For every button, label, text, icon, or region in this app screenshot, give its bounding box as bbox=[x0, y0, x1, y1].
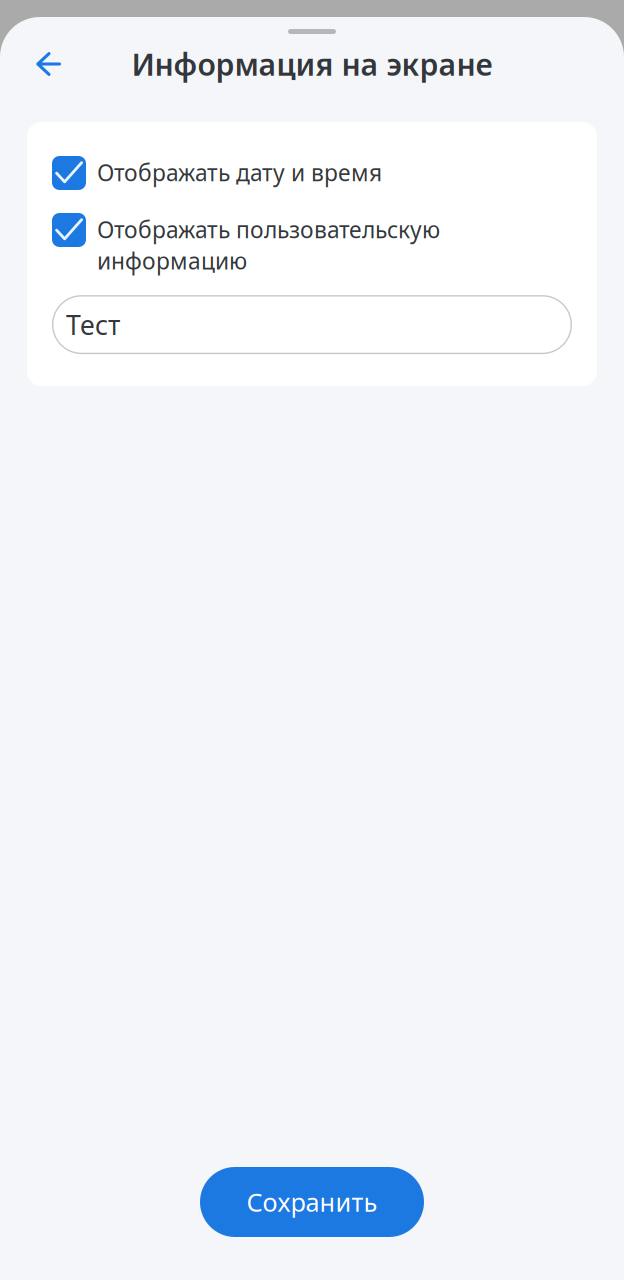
button[interactable]: Отображать пользовательскую информацию bbox=[52, 213, 572, 276]
staticText: Тест bbox=[66, 306, 120, 343]
button[interactable]: Back bbox=[24, 42, 73, 86]
staticText: Информация на экране bbox=[131, 43, 492, 84]
staticText: Отображать дату и время bbox=[97, 157, 382, 188]
button[interactable]: Сохранить bbox=[200, 1167, 424, 1237]
staticText: Сохранить bbox=[246, 1185, 377, 1219]
button[interactable]: Отображать дату и время bbox=[52, 156, 572, 190]
staticText: Отображать пользовательскую информацию bbox=[97, 214, 440, 276]
button[interactable]: Тест bbox=[52, 295, 572, 354]
